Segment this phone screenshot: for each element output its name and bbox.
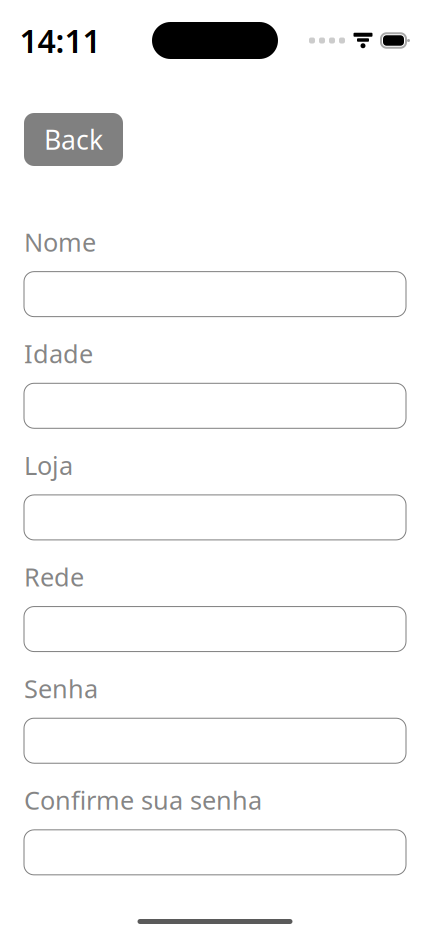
- staticText: 14:11: [19, 19, 100, 62]
- staticText: Loja: [24, 448, 73, 482]
- staticText: Confirme sua senha: [24, 783, 262, 817]
- staticText: Senha: [24, 672, 98, 705]
- button[interactable]: Back: [24, 113, 123, 166]
- staticText: Back: [44, 122, 103, 157]
- staticText: Nome: [24, 225, 96, 259]
- staticText: Idade: [24, 337, 93, 370]
- staticText: Rede: [24, 560, 84, 593]
